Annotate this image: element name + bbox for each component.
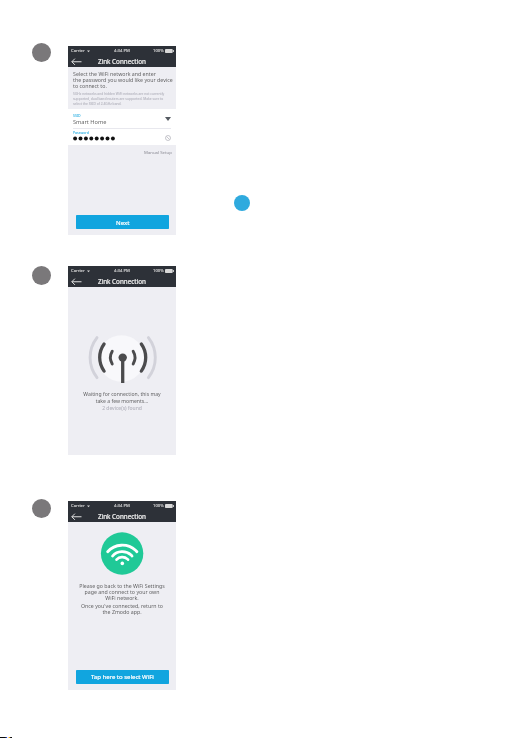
staticText: Please go back to the WiFi Settings page… xyxy=(68,582,176,601)
staticText: 2 device(s) found xyxy=(68,405,176,412)
button[interactable]: Back xyxy=(69,512,83,522)
staticText: Waiting for connection, this may take a … xyxy=(68,391,176,404)
staticText: Carrier xyxy=(71,503,85,509)
staticText: Zink Connection xyxy=(98,57,146,66)
staticText: Once you've connected, return to the Zmo… xyxy=(68,602,176,615)
staticText: 5GHz networks and hidden WiFi networks a… xyxy=(73,91,165,106)
button[interactable]: Back xyxy=(69,57,83,67)
button[interactable]: Back xyxy=(69,277,83,287)
staticText: 4:34 PM xyxy=(114,503,130,509)
staticText: Select the WiFi network and enter the pa… xyxy=(73,70,173,89)
staticText: 100% xyxy=(153,268,164,274)
staticText: Carrier xyxy=(71,48,85,54)
staticText: Carrier xyxy=(71,268,85,274)
staticText: Tap here to select WiFi xyxy=(91,673,154,681)
staticText: 4:34 PM xyxy=(114,268,130,274)
staticText: SSID xyxy=(73,113,81,118)
staticText: Manual Setup xyxy=(144,149,172,155)
button[interactable]: Manual Setup xyxy=(68,149,172,155)
staticText: Zink Connection xyxy=(98,277,146,286)
button[interactable]: Next xyxy=(76,215,169,229)
staticText: 4:34 PM xyxy=(114,48,130,54)
staticText: 100% xyxy=(153,48,164,54)
button[interactable]: Tap here to select WiFi xyxy=(76,670,169,684)
staticText: Zink Connection xyxy=(98,512,146,521)
staticText: Password xyxy=(73,130,89,135)
staticText: 100% xyxy=(153,503,164,509)
staticText: Next xyxy=(116,218,130,226)
staticText: Smart Home xyxy=(73,118,107,126)
